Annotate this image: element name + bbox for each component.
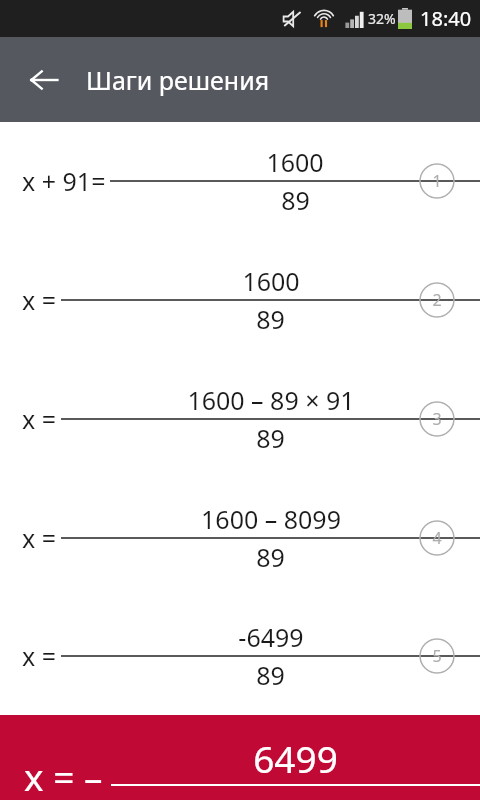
staticText: x = — [22, 402, 57, 436]
button[interactable]: Step 2 — [419, 282, 455, 318]
staticText: 89 — [256, 540, 285, 574]
button[interactable]: x = — [0, 359, 480, 478]
button[interactable]: Back — [16, 52, 72, 108]
button[interactable]: x = – — [0, 715, 480, 800]
staticText: 1600 – 8099 — [201, 502, 341, 536]
button[interactable]: Step 3 — [419, 401, 455, 437]
staticText: 18:40 — [420, 5, 472, 32]
staticText: 89 — [281, 183, 310, 217]
button[interactable]: x = — [0, 240, 480, 359]
staticText: x = — [22, 283, 57, 317]
button[interactable]: x = — [0, 597, 480, 715]
staticText: 3 — [432, 408, 442, 430]
button[interactable]: Step 5 — [419, 638, 455, 674]
staticText: 5 — [432, 645, 442, 667]
staticText: 32% — [368, 9, 396, 28]
staticText: -6499 — [238, 620, 304, 654]
staticText: 1 — [432, 170, 442, 192]
button[interactable]: x + 91= — [0, 122, 480, 240]
staticText: 1600 — [266, 145, 324, 179]
staticText: 1600 — [242, 264, 300, 298]
staticText: 4 — [432, 527, 442, 549]
staticText: 89 — [256, 302, 285, 336]
staticText: 1600 – 89 × 91 — [187, 383, 355, 417]
button[interactable]: Step 4 — [419, 520, 455, 556]
button[interactable]: Step 1 — [419, 163, 455, 199]
staticText: x = — [22, 521, 57, 555]
staticText: x = – — [24, 751, 103, 800]
staticText: 89 — [256, 658, 285, 692]
staticText: 89 — [256, 421, 285, 455]
staticText: x + 91= — [22, 164, 106, 198]
staticText: Шаги решения — [86, 63, 270, 97]
staticText: 2 — [432, 289, 442, 311]
staticText: x = — [22, 639, 57, 673]
staticText: 6499 — [253, 733, 338, 783]
button[interactable]: x = — [0, 478, 480, 597]
